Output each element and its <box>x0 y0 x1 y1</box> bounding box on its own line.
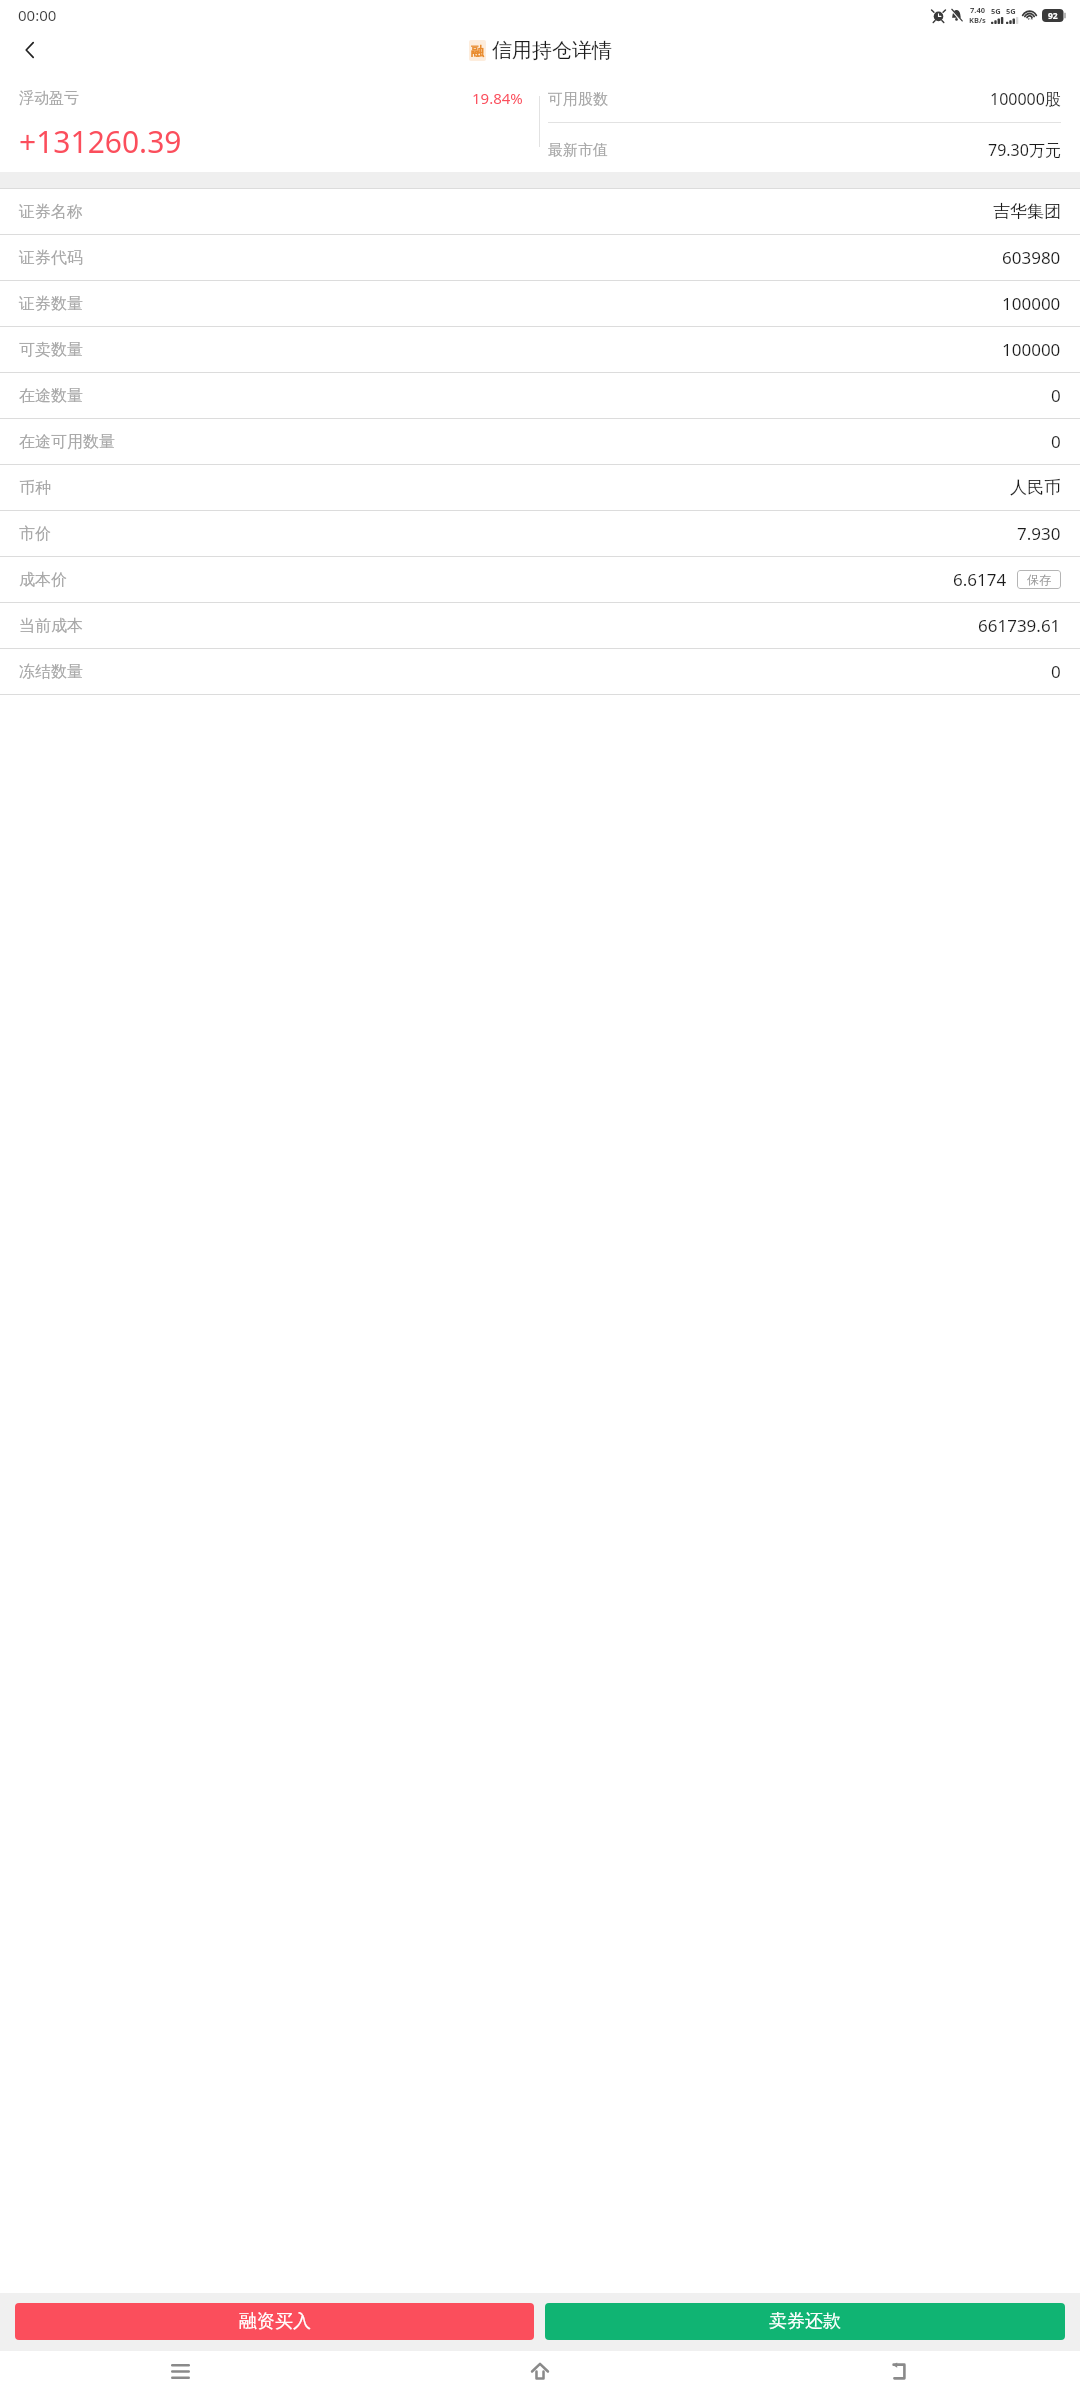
staticText: 5G <box>1006 6 1016 16</box>
staticText: 100000股 <box>990 88 1061 110</box>
button[interactable]: Back <box>8 30 52 70</box>
button[interactable]: 证券代码 <box>0 235 1080 280</box>
staticText: 661739.61 <box>978 614 1061 637</box>
staticText: 79.30万元 <box>988 139 1061 161</box>
button[interactable]: 冻结数量 <box>0 649 1080 694</box>
staticText: 0 <box>1051 430 1061 453</box>
button[interactable]: Back <box>720 2351 1080 2392</box>
staticText: 7.40 <box>970 5 985 15</box>
button[interactable]: 当前成本 <box>0 603 1080 648</box>
button[interactable]: 在途数量 <box>0 373 1080 418</box>
staticText: 603980 <box>1002 246 1061 269</box>
staticText: 浮动盈亏 <box>19 89 79 108</box>
staticText: 6.6174 <box>953 568 1007 591</box>
staticText: 可用股数 <box>548 90 608 109</box>
staticText: 100000 <box>1002 292 1061 315</box>
button[interactable]: 融资买入 <box>15 2303 534 2340</box>
staticText: 当前成本 <box>19 616 83 636</box>
staticText: 冻结数量 <box>19 662 83 682</box>
staticText: 5G <box>991 6 1001 16</box>
staticText: 00:00 <box>18 5 57 25</box>
staticText: 市价 <box>19 524 51 544</box>
staticText: 在途可用数量 <box>19 432 115 452</box>
staticText: 信用持仓详情 <box>492 38 612 63</box>
staticText: 成本价 <box>19 570 67 590</box>
staticText: KB/s <box>969 15 986 25</box>
button[interactable]: 成本价 <box>0 557 1080 602</box>
button[interactable]: 在途可用数量 <box>0 419 1080 464</box>
staticText: 证券代码 <box>19 248 83 268</box>
staticText: 可卖数量 <box>19 340 83 360</box>
button[interactable]: 市价 <box>0 511 1080 556</box>
button[interactable]: 保存 <box>1017 570 1061 589</box>
staticText: 币种 <box>19 478 51 498</box>
button[interactable]: Recent apps <box>0 2351 360 2392</box>
button[interactable]: 证券数量 <box>0 281 1080 326</box>
staticText: 融资买入 <box>239 2310 311 2333</box>
staticText: 0 <box>1051 660 1061 683</box>
staticText: 92 <box>1048 10 1058 22</box>
button[interactable]: 证券名称 <box>0 189 1080 234</box>
staticText: 在途数量 <box>19 386 83 406</box>
staticText: 吉华集团 <box>993 201 1061 222</box>
staticText: 保存 <box>1027 572 1051 587</box>
button[interactable]: Home <box>360 2351 720 2392</box>
staticText: 0 <box>1051 384 1061 407</box>
staticText: 证券名称 <box>19 202 83 222</box>
staticText: 100000 <box>1002 338 1061 361</box>
staticText: 19.84% <box>472 88 523 108</box>
staticText: 证券数量 <box>19 294 83 314</box>
staticText: 人民币 <box>1010 477 1061 498</box>
button[interactable]: 卖券还款 <box>545 2303 1065 2340</box>
button[interactable]: 币种 <box>0 465 1080 510</box>
staticText: 最新市值 <box>548 141 608 160</box>
button[interactable]: 可卖数量 <box>0 327 1080 372</box>
staticText: 融 <box>471 43 484 59</box>
staticText: 卖券还款 <box>769 2310 841 2333</box>
staticText: +131260.39 <box>19 121 182 162</box>
staticText: 7.930 <box>1017 522 1061 545</box>
